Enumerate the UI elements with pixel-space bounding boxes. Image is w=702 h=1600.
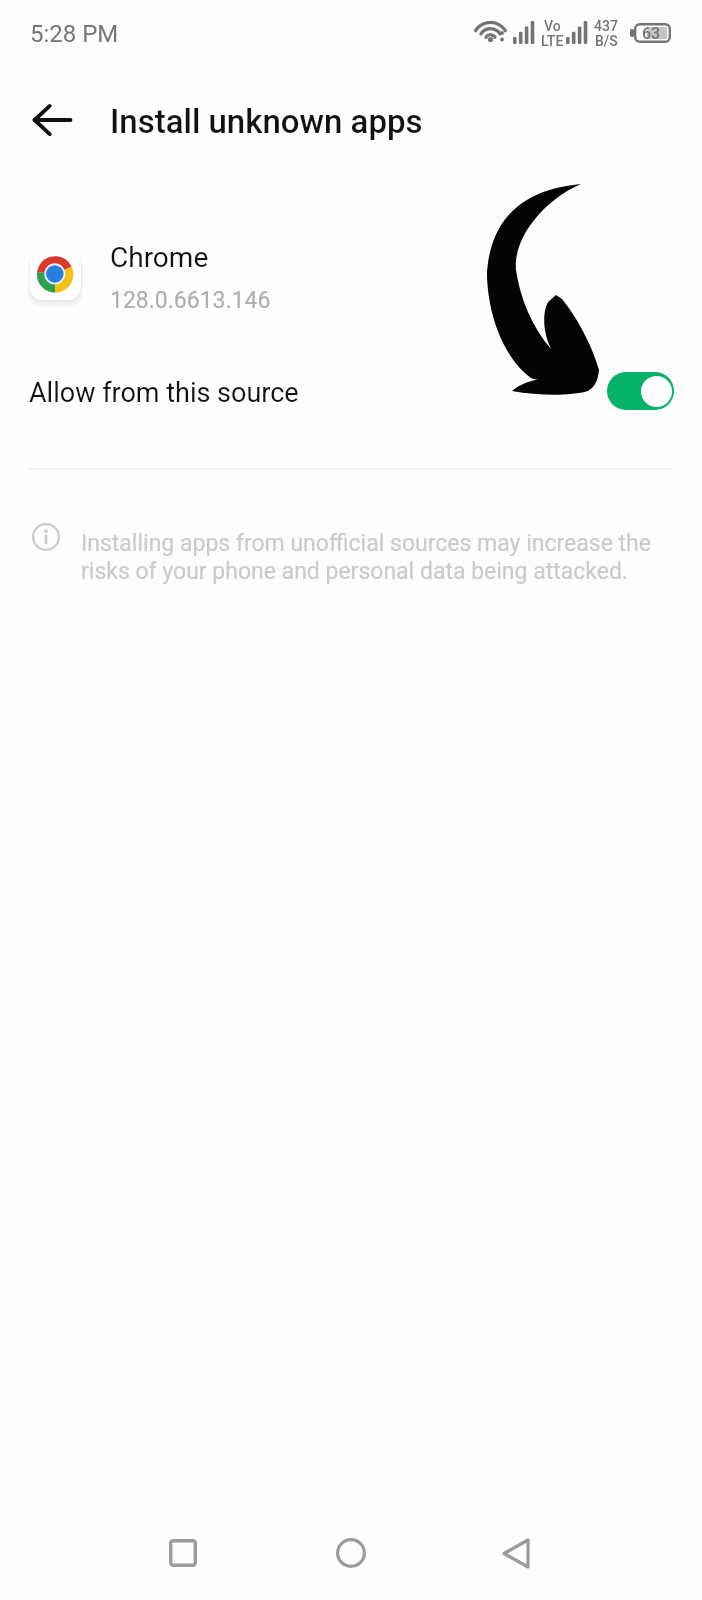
- button[interactable]: Back: [476, 1513, 556, 1593]
- staticText: Install unknown apps: [110, 102, 423, 141]
- staticText: Chrome: [110, 241, 209, 274]
- staticText: LTE: [541, 33, 564, 49]
- staticText: Vo: [544, 18, 561, 34]
- staticText: risks of your phone and personal data be…: [81, 558, 628, 585]
- staticText: 63: [642, 24, 661, 43]
- button[interactable]: Allow from this source: [0, 355, 702, 427]
- staticText: 437: [594, 18, 618, 34]
- staticText: Installing apps from unofficial sources …: [81, 530, 651, 557]
- staticText: 5:28 PM: [30, 20, 119, 48]
- button[interactable]: Home: [311, 1513, 391, 1593]
- button[interactable]: Back: [20, 88, 84, 152]
- button[interactable]: Recent apps: [143, 1513, 223, 1593]
- staticText: 128.0.6613.146: [110, 287, 271, 314]
- staticText: Allow from this source: [29, 377, 299, 409]
- staticText: B/S: [595, 33, 618, 49]
